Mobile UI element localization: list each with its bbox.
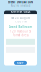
staticText: EVENT INVITATION: [8, 0, 33, 4]
button[interactable]: RSVP: [14, 61, 27, 65]
staticText: RSVP: [17, 61, 24, 65]
staticText: SUMMER GALA: [10, 10, 30, 13]
staticText: Grand Ballroom: [8, 25, 32, 29]
staticText: You're invited: [10, 4, 30, 7]
staticText: 120 Harbour St: [10, 30, 31, 33]
staticText: 7:00 PM: [14, 20, 26, 23]
staticText: Formal dress: [12, 33, 28, 37]
staticText: Sat 24 August: [11, 16, 30, 20]
